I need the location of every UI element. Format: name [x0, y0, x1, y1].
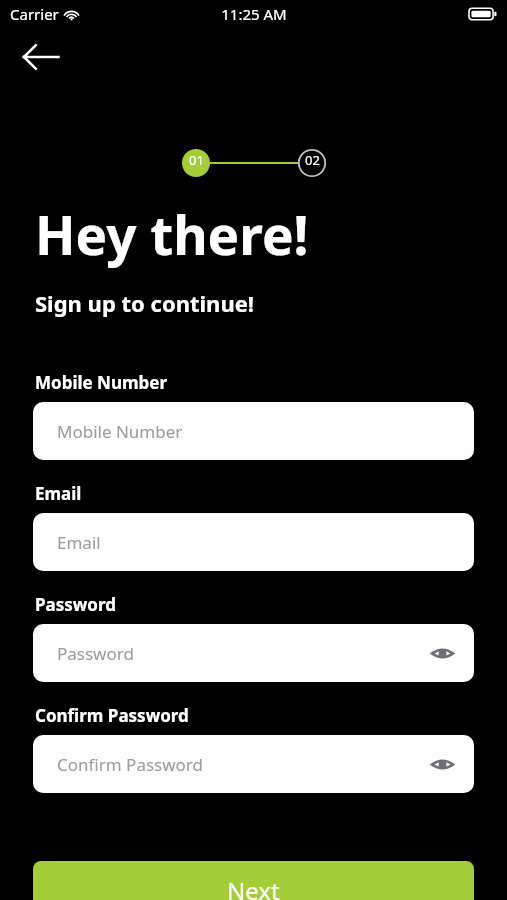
staticText: Sign up to continue!	[35, 288, 255, 318]
staticText: Next	[227, 874, 280, 900]
staticText: Password	[57, 642, 134, 665]
staticText: Confirm Password	[57, 753, 203, 776]
staticText: 01	[189, 151, 204, 169]
staticText: Confirm Password	[35, 704, 189, 727]
button[interactable]: Mobile Number	[33, 402, 474, 460]
button[interactable]: Back	[14, 34, 66, 80]
button[interactable]: Email	[33, 513, 474, 571]
staticText: Password	[35, 593, 116, 616]
staticText: Email	[57, 531, 101, 554]
staticText: 11:25 AM	[221, 4, 287, 24]
staticText: Mobile Number	[57, 420, 183, 443]
staticText: Email	[35, 482, 82, 505]
button[interactable]: Next	[33, 861, 474, 900]
button[interactable]: Confirm Password	[33, 735, 474, 793]
button[interactable]: Show password	[427, 638, 457, 668]
staticText: Hey there!	[35, 198, 309, 270]
button[interactable]: Show password	[427, 749, 457, 779]
button[interactable]: Password	[33, 624, 474, 682]
staticText: 02	[305, 151, 320, 169]
staticText: Carrier	[10, 4, 59, 24]
staticText: Mobile Number	[35, 371, 168, 394]
